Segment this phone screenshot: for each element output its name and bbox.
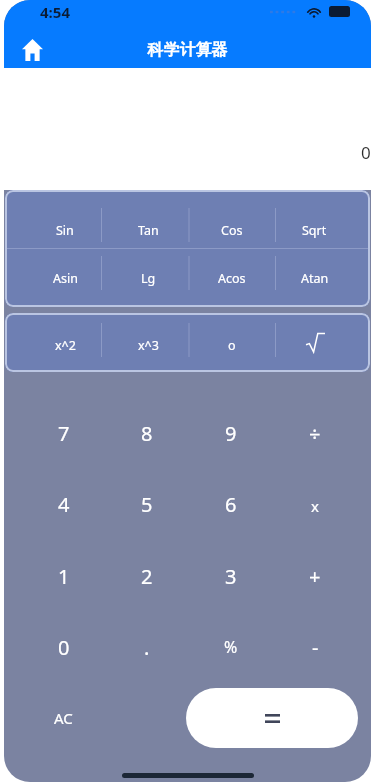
staticText: Atan xyxy=(301,270,329,287)
staticText: x^2 xyxy=(55,337,76,354)
staticText: Asin xyxy=(53,270,78,287)
button[interactable]: 2 xyxy=(105,540,189,612)
staticText: 3 xyxy=(225,563,237,590)
staticText: ÷ xyxy=(309,420,321,447)
staticText: 科学计算器 xyxy=(49,40,326,60)
staticText: % xyxy=(224,636,238,658)
other: Square root xyxy=(273,323,356,357)
button[interactable]: Sin xyxy=(23,208,107,242)
button[interactable]: Cos xyxy=(190,208,273,242)
staticText: 5 xyxy=(141,491,153,518)
staticText: 4 xyxy=(58,491,70,518)
button[interactable]: x xyxy=(273,468,357,540)
staticText: 9 xyxy=(225,420,237,447)
button[interactable]: Tan xyxy=(107,208,190,242)
button[interactable]: 8 xyxy=(105,397,189,469)
staticText: AC xyxy=(54,708,73,728)
staticText: Acos xyxy=(218,270,246,287)
button[interactable]: Asin xyxy=(23,256,107,290)
staticText: 4:54 xyxy=(40,2,70,22)
button[interactable]: 7 xyxy=(22,397,105,469)
button[interactable]: AC xyxy=(22,682,105,754)
button[interactable]: 1 xyxy=(22,540,105,612)
staticText: x xyxy=(311,496,319,516)
staticText: x^3 xyxy=(138,337,159,354)
staticText: - xyxy=(312,634,319,661)
staticText: 2 xyxy=(141,563,153,590)
staticText: 0 xyxy=(361,141,371,164)
staticText: Tan xyxy=(138,222,159,239)
staticText: Cos xyxy=(221,222,243,239)
button[interactable]: x^2 xyxy=(23,323,107,357)
staticText: 7 xyxy=(58,420,70,447)
button[interactable]: 0 xyxy=(22,611,105,683)
button[interactable]: Home xyxy=(15,33,49,67)
staticText: Sin xyxy=(56,222,74,239)
button[interactable]: . xyxy=(105,611,189,683)
staticText: Lg xyxy=(141,270,156,287)
button[interactable]: ÷ xyxy=(273,397,357,469)
button[interactable]: 4 xyxy=(22,468,105,540)
button[interactable]: 5 xyxy=(105,468,189,540)
button[interactable]: 3 xyxy=(189,540,273,612)
button[interactable]: Equals xyxy=(186,688,358,748)
button[interactable]: Acos xyxy=(190,256,273,290)
button[interactable]: Lg xyxy=(107,256,190,290)
staticText: 6 xyxy=(225,491,237,518)
button[interactable]: Sqrt xyxy=(273,208,356,242)
button[interactable]: x^3 xyxy=(107,323,190,357)
button[interactable]: - xyxy=(273,611,357,683)
staticText: . xyxy=(144,634,150,661)
button[interactable]: Atan xyxy=(273,256,356,290)
staticText: + xyxy=(309,563,321,590)
button[interactable]: Square root xyxy=(273,323,356,357)
button[interactable]: 9 xyxy=(189,397,273,469)
button[interactable]: 6 xyxy=(189,468,273,540)
staticText: 8 xyxy=(141,420,153,447)
button[interactable]: + xyxy=(273,540,357,612)
staticText: o xyxy=(228,337,236,354)
staticText: 1 xyxy=(58,563,70,590)
button[interactable]: % xyxy=(189,611,273,683)
staticText: Sqrt xyxy=(302,222,327,239)
staticText: 0 xyxy=(58,634,70,661)
button[interactable]: o xyxy=(190,323,273,357)
